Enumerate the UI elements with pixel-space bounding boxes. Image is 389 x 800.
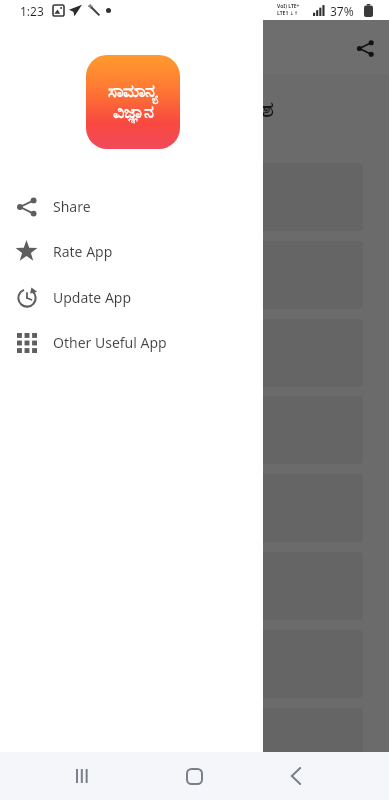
button[interactable] xyxy=(255,552,363,620)
staticText: 1:23 xyxy=(20,3,44,19)
button[interactable]: Home xyxy=(182,764,206,788)
staticText: ಸಾಮಾನ್ಯ xyxy=(108,83,158,100)
button[interactable]: Other Useful App xyxy=(0,320,263,365)
staticText: Update App xyxy=(53,288,132,307)
staticText: ವಿಜ್ಞಾನ xyxy=(113,104,154,121)
staticText: Rate App xyxy=(53,242,113,261)
staticText: Share xyxy=(53,197,91,216)
button[interactable] xyxy=(255,319,363,387)
button[interactable]: Update App xyxy=(0,275,263,320)
button[interactable] xyxy=(255,474,363,542)
staticText: Other Useful App xyxy=(53,333,167,352)
staticText: 37% xyxy=(330,3,354,19)
button[interactable] xyxy=(255,708,363,776)
button[interactable]: Share xyxy=(0,184,263,229)
staticText: LTE1 ↓↑ xyxy=(277,10,298,17)
button[interactable]: Back xyxy=(284,764,308,788)
button[interactable] xyxy=(255,396,363,464)
button[interactable]: Recent apps xyxy=(71,764,95,788)
staticText: VoI) LTE+ xyxy=(277,3,300,10)
button[interactable]: Share xyxy=(351,34,379,62)
staticText: ಶ xyxy=(262,100,274,121)
button[interactable] xyxy=(255,630,363,698)
button[interactable] xyxy=(255,241,363,309)
button[interactable] xyxy=(255,163,363,231)
button[interactable]: ಸಾಮಾನ್ಯ xyxy=(86,55,180,149)
button[interactable]: Rate App xyxy=(0,229,263,274)
